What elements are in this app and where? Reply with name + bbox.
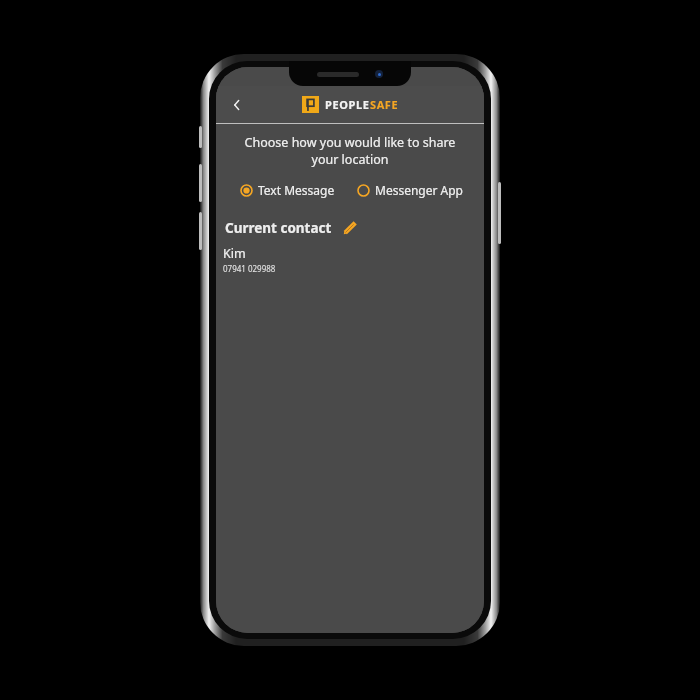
button[interactable]: Messenger App <box>357 180 463 200</box>
button[interactable]: Edit contact <box>339 218 359 238</box>
button[interactable]: Back <box>222 90 252 120</box>
staticText: Messenger App <box>375 182 463 198</box>
staticText: PEOPLE <box>325 97 370 112</box>
staticText: Current contact <box>225 219 332 237</box>
staticText: Kim <box>223 245 246 262</box>
button[interactable]: Text Message <box>240 180 335 200</box>
staticText: 07941 029988 <box>223 263 276 274</box>
staticText: SAFE <box>370 97 399 112</box>
staticText: Text Message <box>258 182 335 198</box>
staticText: Choose how you would like to share your … <box>234 134 466 167</box>
